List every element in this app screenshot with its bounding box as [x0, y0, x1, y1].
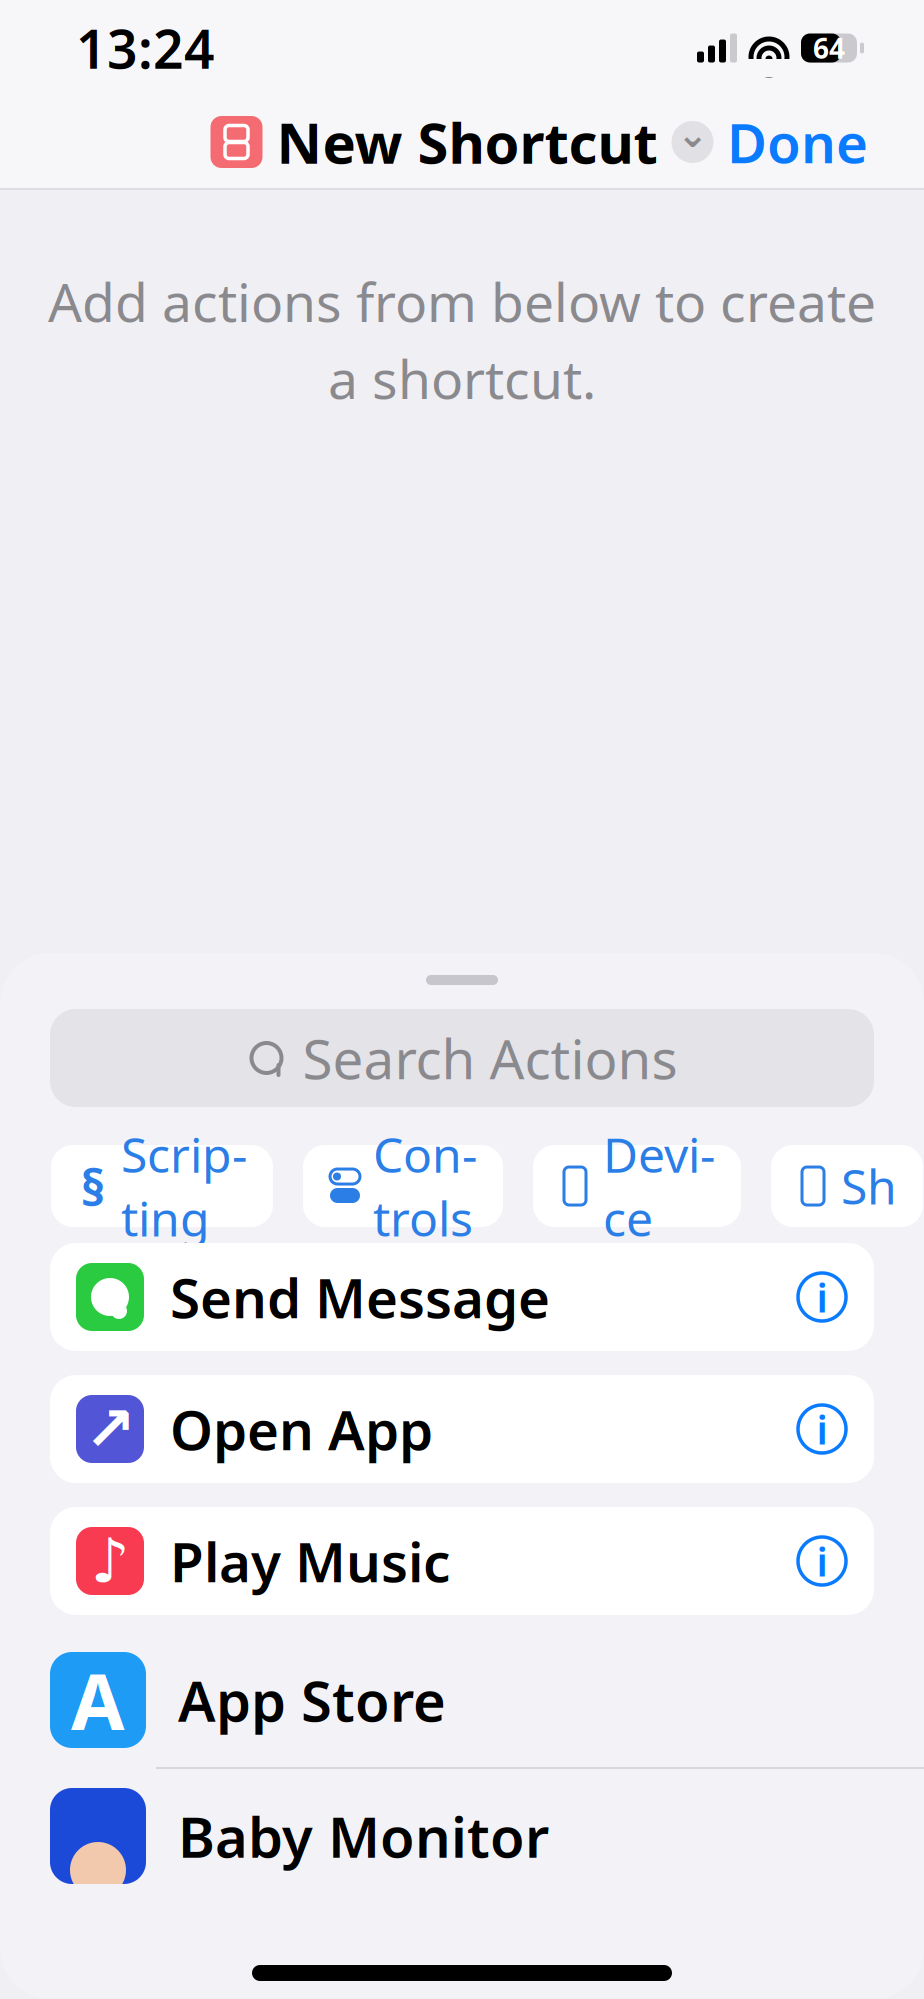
- staticText: ⌄: [677, 113, 708, 155]
- staticText: Done: [727, 106, 868, 178]
- staticText: Controls: [373, 1122, 477, 1250]
- staticText: Baby Monitor: [178, 1799, 549, 1873]
- staticText: Open App: [170, 1393, 433, 1465]
- staticText: §: [80, 1152, 105, 1220]
- staticText: App Store: [178, 1663, 446, 1737]
- button[interactable]: A: [0, 1633, 924, 1767]
- staticText: 13:24: [76, 13, 215, 83]
- staticText: Send Message: [170, 1261, 550, 1333]
- button[interactable]: Sh: [771, 1145, 923, 1227]
- button[interactable]: Baby Monitor: [0, 1767, 924, 1903]
- staticText: Add actions from below to create: [48, 266, 876, 337]
- button[interactable]: Send Message: [50, 1243, 874, 1351]
- button[interactable]: ♪: [50, 1507, 874, 1615]
- staticText: ♪: [90, 1526, 129, 1596]
- staticText: 64: [813, 29, 845, 67]
- staticText: i: [816, 1534, 827, 1587]
- button[interactable]: Controls: [303, 1145, 503, 1227]
- staticText: Play Music: [170, 1525, 450, 1597]
- staticText: a shortcut.: [328, 343, 596, 414]
- staticText: i: [816, 1270, 827, 1323]
- staticText: Device: [603, 1122, 715, 1250]
- button[interactable]: §: [51, 1145, 273, 1227]
- button[interactable]: Device: [533, 1145, 741, 1227]
- staticText: A: [71, 1649, 125, 1751]
- staticText: i: [816, 1402, 827, 1455]
- staticText: Scripting: [121, 1122, 247, 1250]
- button[interactable]: ↗: [50, 1375, 874, 1483]
- staticText: New Shortcut: [276, 105, 657, 179]
- staticText: Search Actions: [302, 1022, 677, 1094]
- button[interactable]: Done: [705, 94, 890, 190]
- staticText: ↗: [84, 1394, 135, 1464]
- staticText: Sh: [841, 1154, 897, 1218]
